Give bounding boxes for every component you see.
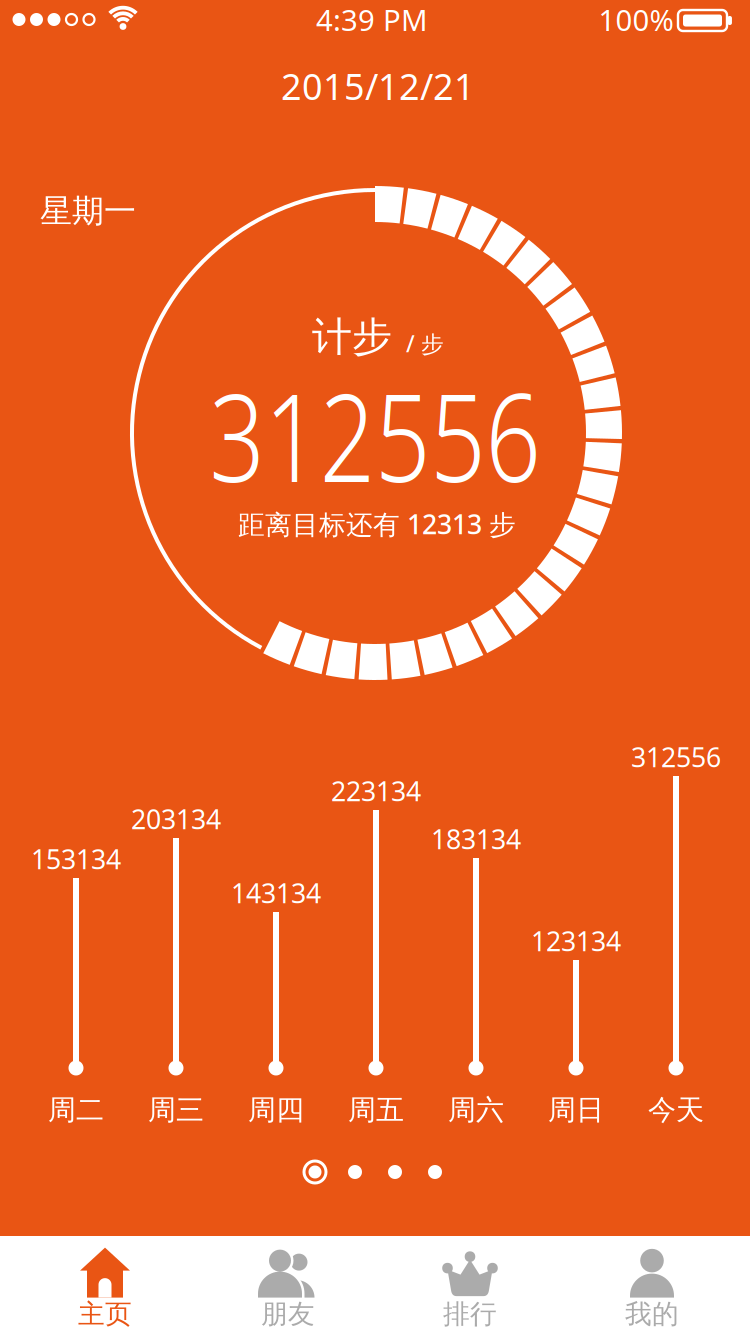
staticText: 朋友 xyxy=(261,1298,315,1330)
staticText: 周五 xyxy=(348,1093,404,1127)
staticText: 203134 xyxy=(131,801,221,837)
staticText: 2015/12/21 xyxy=(281,62,475,110)
staticText: 143134 xyxy=(231,875,321,911)
staticText: / 步 xyxy=(406,328,444,359)
staticText: 今天 xyxy=(648,1093,704,1127)
staticText: 223134 xyxy=(331,773,421,809)
staticText: 4:39 PM xyxy=(316,0,428,39)
staticText: 183134 xyxy=(431,821,521,857)
staticText: 周六 xyxy=(448,1093,504,1127)
staticText: 312556 xyxy=(168,354,582,515)
button[interactable]: 主页 xyxy=(78,1248,132,1330)
button[interactable]: 朋友 xyxy=(257,1248,319,1330)
staticText: 排行 xyxy=(443,1298,497,1330)
staticText: 计步 xyxy=(312,312,392,361)
staticText: 123134 xyxy=(531,923,621,959)
staticText: 周日 xyxy=(548,1093,604,1127)
staticText: 153134 xyxy=(31,841,121,877)
staticText: 我的 xyxy=(625,1298,679,1330)
staticText: 周三 xyxy=(148,1093,204,1127)
button[interactable]: 排行 xyxy=(442,1248,498,1330)
staticText: 主页 xyxy=(78,1298,132,1330)
staticText: 星期一 xyxy=(40,191,136,231)
staticText: 距离目标还有 12313 步 xyxy=(238,506,516,542)
staticText: 周二 xyxy=(48,1093,104,1127)
staticText: 100% xyxy=(598,0,673,39)
staticText: 周四 xyxy=(248,1093,304,1127)
button[interactable]: 我的 xyxy=(625,1248,679,1330)
staticText: 312556 xyxy=(631,739,721,775)
